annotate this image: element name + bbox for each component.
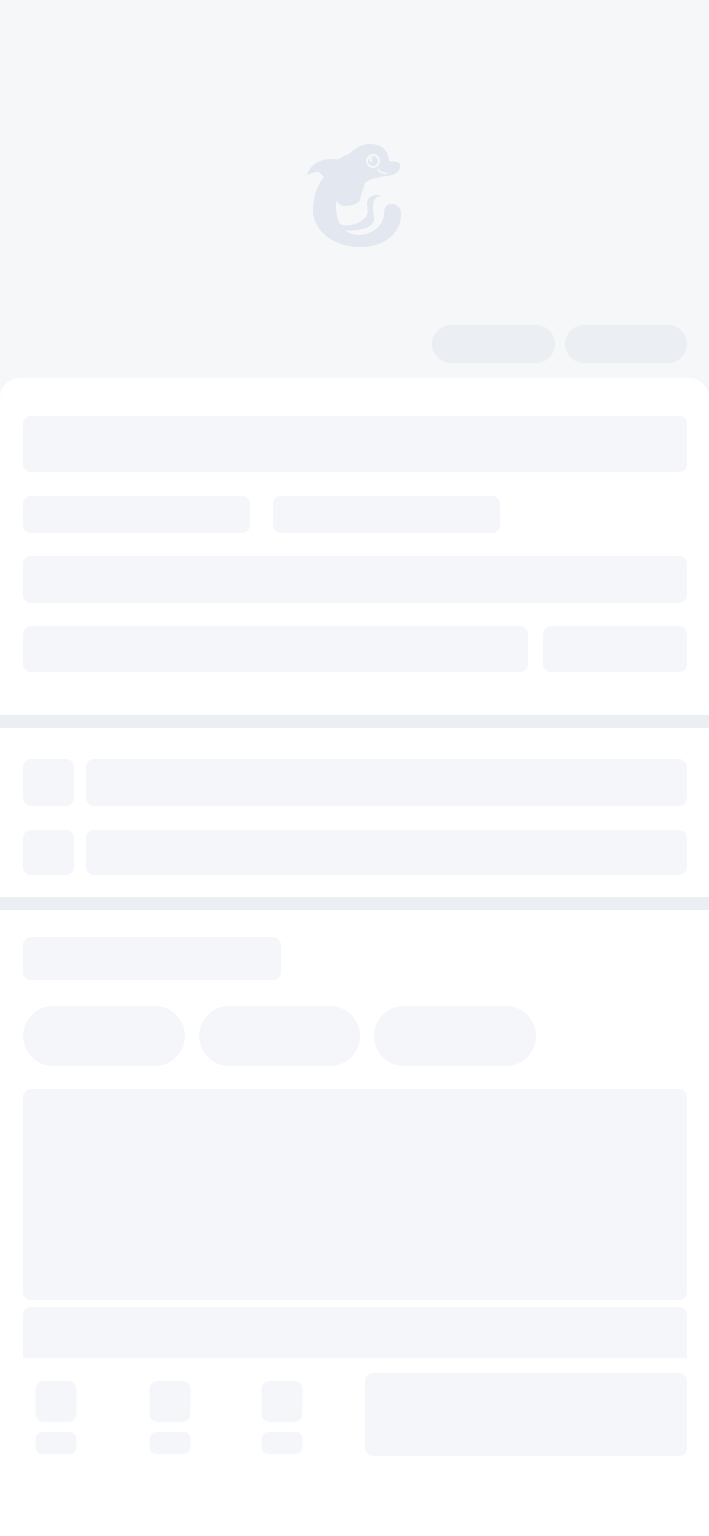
button[interactable]: Home — [36, 1358, 76, 1454]
button[interactable]: Search — [150, 1358, 190, 1454]
button[interactable]: Library — [262, 1358, 302, 1454]
